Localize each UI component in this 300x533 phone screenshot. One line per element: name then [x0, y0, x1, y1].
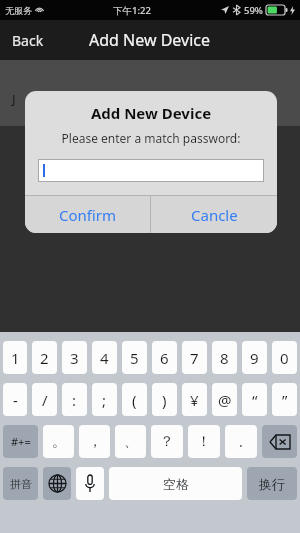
button[interactable]: 8: [212, 341, 237, 374]
staticText: J: [12, 90, 16, 108]
button[interactable]: 6: [152, 341, 177, 374]
button[interactable]: 0: [272, 341, 297, 374]
staticText: ): [162, 390, 167, 410]
button[interactable]: 7: [182, 341, 207, 374]
button[interactable]: ！: [188, 425, 220, 458]
button[interactable]: ;: [92, 383, 117, 416]
button[interactable]: 1: [3, 341, 27, 374]
staticText: 7: [190, 348, 199, 368]
button[interactable]: 2: [32, 341, 57, 374]
staticText: 2: [40, 348, 49, 368]
staticText: ？: [160, 433, 174, 451]
button[interactable]: 、: [115, 425, 146, 458]
staticText: Confirm: [59, 205, 117, 225]
button[interactable]: Voice input: [76, 467, 104, 500]
staticText: Cancle: [191, 205, 238, 225]
button[interactable]: 3: [62, 341, 87, 374]
staticText: 。: [52, 433, 66, 451]
button[interactable]: [38, 159, 264, 182]
staticText: -: [13, 390, 18, 410]
staticText: 9: [250, 348, 259, 368]
staticText: 、: [124, 433, 138, 451]
button[interactable]: ？: [151, 425, 183, 458]
button[interactable]: :: [62, 383, 87, 416]
staticText: ！: [197, 433, 211, 451]
staticText: :: [72, 390, 77, 410]
button[interactable]: (: [122, 383, 147, 416]
staticText: .: [239, 432, 243, 451]
button[interactable]: ¥: [182, 383, 207, 416]
staticText: @: [218, 390, 232, 410]
button[interactable]: ): [152, 383, 177, 416]
staticText: “: [252, 390, 258, 410]
staticText: 无服务: [5, 5, 32, 16]
button[interactable]: Confirm: [25, 196, 150, 233]
staticText: 0: [280, 348, 289, 368]
staticText: ;: [102, 390, 107, 410]
staticText: /: [42, 390, 48, 410]
button[interactable]: .: [225, 425, 257, 458]
button[interactable]: 5: [122, 341, 147, 374]
button[interactable]: 9: [242, 341, 267, 374]
button[interactable]: Cancle: [151, 196, 277, 233]
button[interactable]: @: [212, 383, 237, 416]
staticText: 8: [220, 348, 229, 368]
button[interactable]: Back: [0, 23, 56, 58]
staticText: 4: [100, 348, 109, 368]
staticText: 1: [11, 348, 20, 368]
button[interactable]: 。: [43, 425, 74, 458]
staticText: 下午1:22: [113, 4, 151, 17]
staticText: 59%: [244, 4, 263, 17]
button[interactable]: 换行: [247, 467, 297, 500]
staticText: (: [132, 390, 137, 410]
button[interactable]: /: [32, 383, 57, 416]
staticText: 5: [130, 348, 139, 368]
staticText: Add New Device: [25, 103, 277, 123]
button[interactable]: ，: [79, 425, 110, 458]
staticText: #+=: [11, 434, 31, 449]
staticText: ¥: [190, 390, 199, 410]
button[interactable]: “: [242, 383, 267, 416]
staticText: Back: [12, 31, 44, 50]
staticText: Add New Device: [89, 29, 211, 51]
button[interactable]: 拼音: [3, 467, 38, 500]
staticText: 6: [160, 348, 169, 368]
button[interactable]: 空格: [109, 467, 242, 500]
button[interactable]: -: [3, 383, 27, 416]
staticText: 空格: [163, 476, 189, 492]
staticText: 换行: [259, 476, 285, 492]
button[interactable]: 4: [92, 341, 117, 374]
button[interactable]: Change keyboard: [43, 467, 71, 500]
button[interactable]: Delete: [262, 425, 297, 458]
staticText: 3: [70, 348, 79, 368]
button[interactable]: #+=: [3, 425, 38, 458]
staticText: ”: [282, 390, 288, 410]
button[interactable]: ”: [272, 383, 297, 416]
staticText: ，: [88, 433, 102, 451]
staticText: Please enter a match password:: [25, 130, 277, 146]
staticText: 拼音: [10, 477, 32, 491]
